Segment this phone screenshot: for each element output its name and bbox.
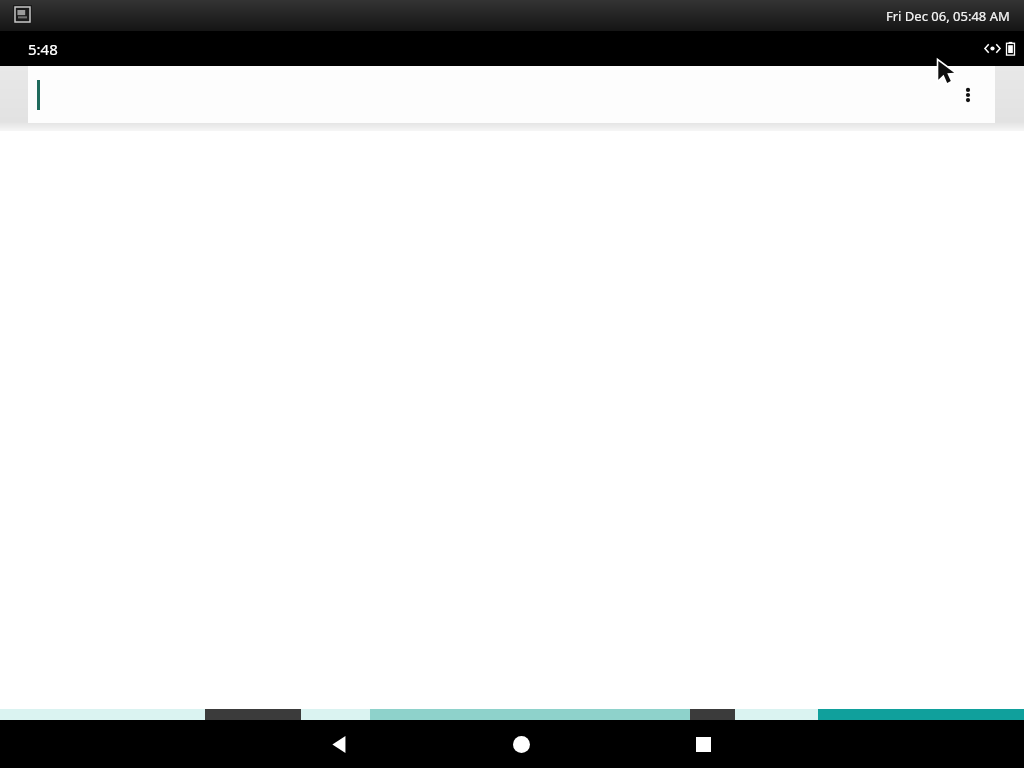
button[interactable]: Recent apps bbox=[679, 720, 727, 768]
staticText: Fri Dec 06, 05:48 AM bbox=[886, 7, 1010, 25]
button[interactable]: Emulator menu bbox=[13, 5, 32, 24]
button[interactable]: Home bbox=[497, 720, 545, 768]
button[interactable]: Text input field bbox=[28, 66, 995, 123]
button[interactable]: Back bbox=[315, 720, 363, 768]
button[interactable]: More options bbox=[949, 76, 987, 114]
staticText: 5:48 bbox=[28, 39, 58, 59]
